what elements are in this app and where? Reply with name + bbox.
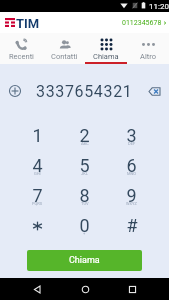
button[interactable]: 0112345678 <box>122 19 167 27</box>
staticText: Recenti <box>9 52 34 61</box>
staticText: WXYZ <box>126 201 137 206</box>
staticText: Chiama <box>69 255 100 266</box>
staticText: PQRS <box>32 201 43 206</box>
button[interactable]: Indietro <box>26 278 48 300</box>
staticText: 4 <box>32 155 43 176</box>
button[interactable]: 3 <box>108 120 155 150</box>
button[interactable]: Chiama <box>27 250 142 271</box>
staticText: + <box>83 231 86 236</box>
staticText: Contatti <box>51 52 78 61</box>
button[interactable]: 4 <box>14 150 61 180</box>
staticText: 0112345678 <box>122 19 162 27</box>
button[interactable]: Chiama <box>85 33 127 64</box>
staticText: DEF <box>128 141 136 146</box>
button[interactable]: # <box>108 210 155 240</box>
staticText: 3337654321 <box>36 82 133 101</box>
button[interactable] <box>14 210 61 240</box>
button[interactable]: 9 <box>108 180 155 210</box>
staticText: # <box>126 215 138 236</box>
staticText: 6 <box>126 155 137 176</box>
button[interactable]: Aggiungi contatto <box>4 80 26 102</box>
staticText: 8 <box>79 185 90 206</box>
button[interactable]: 7 <box>14 180 61 210</box>
staticText: JKL <box>81 171 88 176</box>
staticText: ABC <box>81 141 89 146</box>
button[interactable]: 6 <box>108 150 155 180</box>
staticText: 3 <box>126 125 137 146</box>
staticText: 2 <box>79 125 90 146</box>
staticText: 0 <box>79 215 90 236</box>
button[interactable]: App recenti <box>121 278 143 300</box>
button[interactable]: Cancella <box>143 80 165 102</box>
staticText: TUV <box>81 201 89 206</box>
staticText: 5 <box>79 155 90 176</box>
button[interactable]: 2 <box>61 120 108 150</box>
staticText: 11:20 <box>149 2 169 11</box>
button[interactable]: 1 <box>14 120 61 150</box>
button[interactable]: Recenti <box>0 33 43 64</box>
staticText: 1 <box>32 125 43 146</box>
button[interactable]: 0 <box>61 210 108 240</box>
staticText: Altro <box>140 52 156 61</box>
staticText: MNO <box>127 171 137 176</box>
staticText: TIM <box>16 16 40 31</box>
staticText: Chiama <box>93 52 119 61</box>
staticText: 7 <box>32 185 43 206</box>
staticText: GHI <box>34 171 41 176</box>
button[interactable]: Home <box>74 278 96 300</box>
button[interactable]: 8 <box>61 180 108 210</box>
button[interactable]: Altro <box>127 33 169 64</box>
button[interactable]: 5 <box>61 150 108 180</box>
button[interactable]: Contatti <box>43 33 85 64</box>
staticText: 9 <box>126 185 137 206</box>
